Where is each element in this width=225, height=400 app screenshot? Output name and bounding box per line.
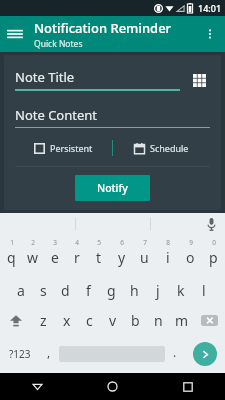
button[interactable]: 6 — [110, 235, 133, 269]
button[interactable]: Home — [75, 373, 150, 400]
staticText: d — [61, 281, 70, 300]
button[interactable]: Backspace — [193, 303, 225, 337]
staticText: y — [118, 248, 126, 267]
staticText: t — [96, 248, 102, 267]
staticText: 2 — [31, 238, 35, 247]
button[interactable]: Enter — [185, 337, 225, 371]
button[interactable]: b — [124, 303, 147, 337]
button[interactable]: n — [147, 303, 170, 337]
button[interactable]: k — [169, 269, 192, 303]
staticText: . — [173, 344, 177, 360]
staticText: e — [51, 248, 59, 267]
staticText: p — [209, 248, 218, 267]
button[interactable]: Persistent — [15, 139, 112, 157]
button[interactable]: More options — [195, 19, 225, 49]
staticText: x — [63, 311, 71, 330]
button[interactable]: m — [170, 303, 193, 337]
staticText: 5 — [97, 238, 101, 247]
staticText: j — [156, 281, 160, 300]
staticText: h — [130, 281, 139, 300]
button[interactable]: g — [100, 269, 123, 303]
staticText: 1 — [10, 238, 14, 247]
button[interactable]: l — [192, 269, 215, 303]
button[interactable]: z — [32, 303, 55, 337]
button[interactable]: 8 — [156, 235, 179, 269]
button[interactable]: x — [55, 303, 78, 337]
button[interactable]: 7 — [133, 235, 156, 269]
button[interactable]: ?123 — [0, 337, 39, 371]
button[interactable]: j — [146, 269, 169, 303]
staticText: w — [27, 248, 39, 267]
button[interactable]: 2 — [22, 235, 44, 269]
staticText: i — [166, 248, 170, 267]
button[interactable]: 9 — [179, 235, 202, 269]
staticText: l — [202, 281, 206, 300]
staticText: 4 — [75, 238, 79, 247]
staticText: 0 — [212, 238, 216, 247]
staticText: c — [86, 311, 93, 330]
staticText: n — [154, 311, 163, 330]
staticText: 9 — [189, 238, 193, 247]
button[interactable]: Notify — [75, 175, 150, 201]
staticText: Notification Reminder — [34, 19, 172, 37]
button[interactable]: s — [32, 269, 54, 303]
staticText: m — [175, 311, 189, 330]
button[interactable]: Schedule — [113, 139, 210, 157]
staticText: r — [74, 248, 80, 267]
staticText: Notify — [97, 181, 128, 195]
button[interactable]: 0 — [202, 235, 225, 269]
staticText: s — [40, 281, 47, 300]
staticText: Schedule — [150, 142, 189, 154]
staticText: 7 — [143, 238, 147, 247]
staticText: z — [40, 311, 47, 330]
button[interactable]: Voice input — [151, 213, 225, 235]
button[interactable]: , — [39, 337, 59, 371]
staticText: f — [86, 281, 91, 300]
staticText: 6 — [120, 238, 124, 247]
button[interactable]: 4 — [66, 235, 88, 269]
button[interactable]: 1 — [0, 235, 22, 269]
staticText: 14:01 — [198, 2, 222, 14]
staticText: u — [140, 248, 149, 267]
button[interactable]: Choose icon — [188, 69, 210, 91]
button[interactable]: Recent apps — [150, 373, 225, 400]
staticText: k — [177, 281, 185, 300]
button[interactable]: d — [54, 269, 77, 303]
button[interactable]: f — [77, 269, 100, 303]
staticText: o — [186, 248, 195, 267]
staticText: 8 — [166, 238, 170, 247]
button[interactable]: Shift — [0, 303, 32, 337]
staticText: Quick Notes — [34, 38, 83, 50]
button[interactable]: v — [101, 303, 124, 337]
staticText: , — [47, 344, 51, 360]
staticText: v — [109, 311, 117, 330]
staticText: ?123 — [9, 347, 31, 361]
button[interactable]: Open navigation menu — [0, 19, 30, 49]
staticText: Persistent — [50, 142, 93, 154]
staticText: b — [131, 311, 140, 330]
button[interactable]: a — [10, 269, 32, 303]
staticText: Note Content — [15, 106, 98, 124]
staticText: Note Title — [15, 68, 75, 86]
button[interactable]: 5 — [88, 235, 110, 269]
staticText: a — [17, 281, 25, 300]
button[interactable]: 3 — [44, 235, 66, 269]
staticText: 3 — [53, 238, 57, 247]
button[interactable]: h — [123, 269, 146, 303]
staticText: q — [7, 248, 16, 267]
button[interactable]: Back — [0, 373, 75, 400]
staticText: g — [107, 281, 116, 300]
button[interactable]: c — [78, 303, 101, 337]
button[interactable]: . — [165, 337, 185, 371]
